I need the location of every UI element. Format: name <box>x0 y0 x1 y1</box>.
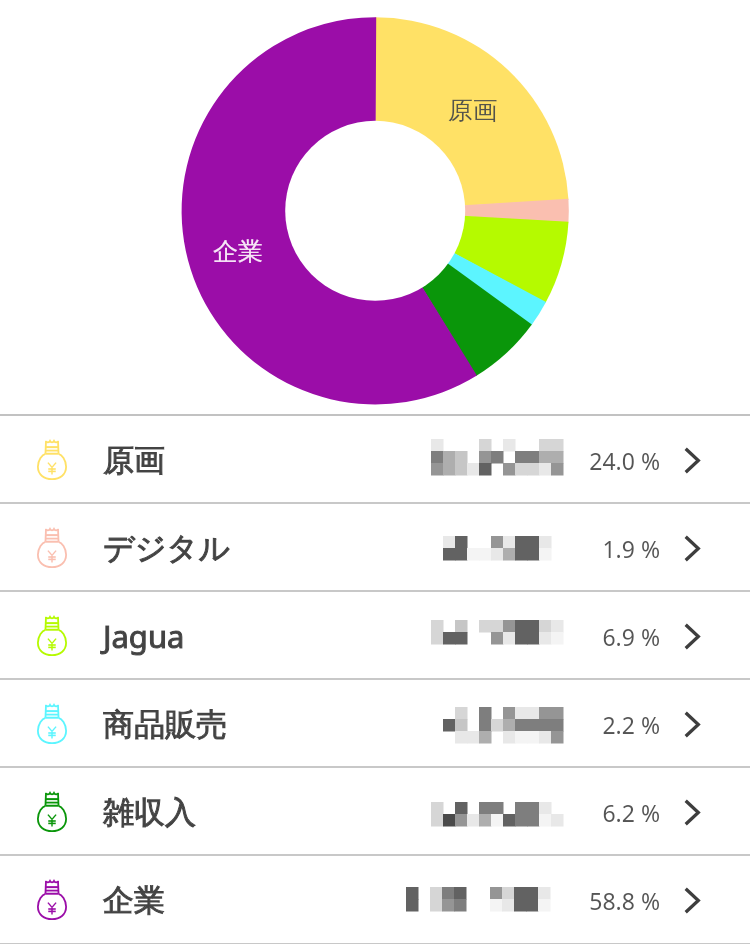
button[interactable]: Jagua <box>0 592 750 680</box>
staticText: 2.2 % <box>602 709 660 740</box>
staticText: 6.9 % <box>602 621 660 652</box>
other: 詳細 <box>684 416 710 504</box>
staticText: 企業 <box>103 881 165 920</box>
button[interactable]: 雑収入 <box>0 768 750 856</box>
button[interactable]: 原画 <box>0 416 750 504</box>
other: 詳細 <box>684 768 710 856</box>
other: 詳細 <box>684 592 710 680</box>
staticText: 原画 <box>448 95 498 126</box>
staticText: Jagua <box>103 615 185 657</box>
button[interactable]: 企業 <box>0 856 750 944</box>
staticText: 24.0 % <box>589 445 660 476</box>
button[interactable]: デジタル <box>0 504 750 592</box>
staticText: 雑収入 <box>103 793 196 832</box>
other: 詳細 <box>684 856 710 944</box>
staticText: 58.8 % <box>589 885 660 916</box>
staticText: 原画 <box>103 441 165 480</box>
staticText: 企業 <box>103 881 165 920</box>
staticText: デジタル <box>103 529 230 568</box>
staticText: 雑収入 <box>103 793 196 832</box>
staticText: 企業 <box>213 236 263 267</box>
staticText: 商品販売 <box>103 705 227 744</box>
other: 詳細 <box>684 504 710 592</box>
staticText: Jagua <box>103 615 185 657</box>
staticText: 1.9 % <box>602 533 660 564</box>
staticText: 原画 <box>103 441 165 480</box>
staticText: デジタル <box>103 529 230 568</box>
staticText: 6.2 % <box>602 797 660 828</box>
staticText: 商品販売 <box>103 705 227 744</box>
button[interactable]: 商品販売 <box>0 680 750 768</box>
other: 詳細 <box>684 680 710 768</box>
